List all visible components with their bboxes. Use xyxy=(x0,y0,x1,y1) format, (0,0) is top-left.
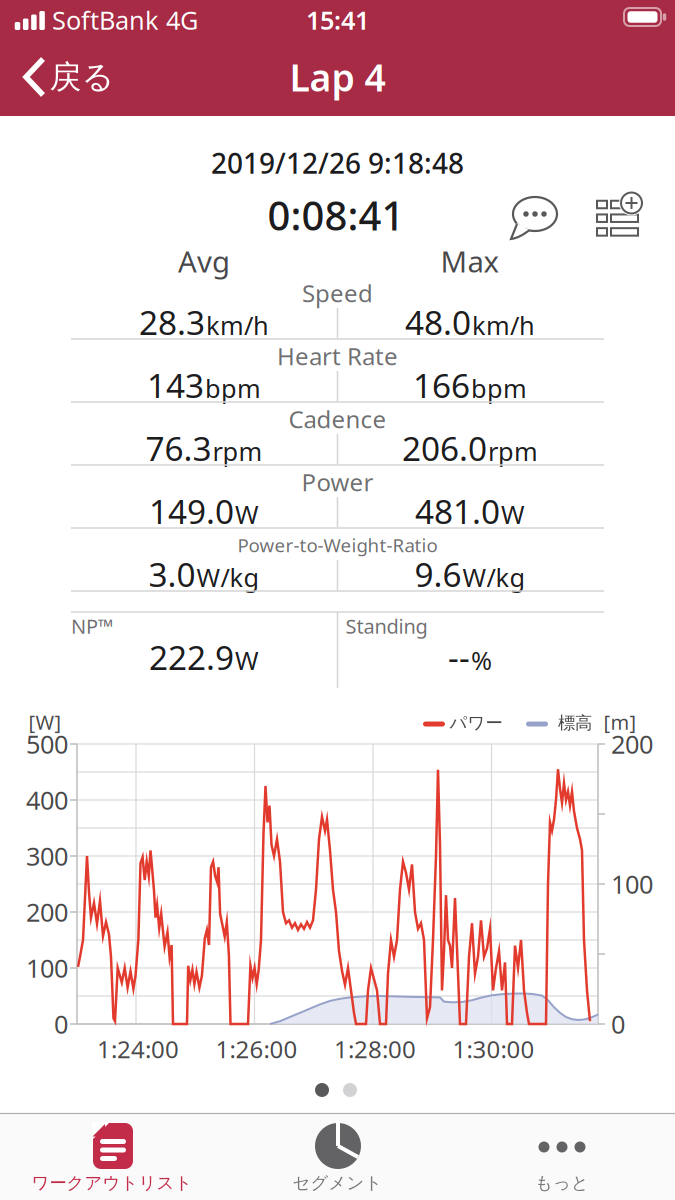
staticText: 0:08:41 xyxy=(267,188,404,241)
staticText: パワー xyxy=(449,712,502,734)
staticText: 166 xyxy=(413,363,470,407)
staticText: km/h xyxy=(206,308,269,342)
staticText: SoftBank 4G xyxy=(52,3,198,37)
staticText: rpm xyxy=(488,434,538,468)
staticText: % xyxy=(471,643,492,677)
staticText: Heart Rate xyxy=(277,340,398,372)
button[interactable]: もっと xyxy=(450,1113,675,1200)
staticText: 481.0 xyxy=(415,489,500,533)
staticText: 149.0 xyxy=(149,489,234,533)
staticText: もっと xyxy=(535,1172,589,1194)
staticText: Power-to-Weight-Ratio xyxy=(237,533,437,557)
staticText: W xyxy=(235,497,259,531)
staticText: 標高 xyxy=(558,712,592,734)
staticText: 15:41 xyxy=(306,3,369,37)
staticText: 206.0 xyxy=(402,426,487,470)
button[interactable]: ワークアウトリスト xyxy=(0,1113,225,1200)
staticText: km/h xyxy=(472,308,535,342)
staticText: Cadence xyxy=(288,403,386,435)
staticText: Lap 4 xyxy=(289,52,385,102)
staticText: -- xyxy=(448,635,470,679)
button[interactable]: ラップリスト追加 xyxy=(592,187,648,243)
staticText: ワークアウトリスト xyxy=(31,1172,192,1194)
staticText: 3.0 xyxy=(148,552,195,596)
staticText: 500 xyxy=(26,727,68,761)
staticText: 76.3 xyxy=(145,426,211,470)
staticText: 48.0 xyxy=(405,300,471,344)
staticText: Max xyxy=(440,241,499,280)
staticText: 100 xyxy=(26,951,68,985)
button[interactable]: 戻る xyxy=(2,41,132,113)
staticText: W/kg xyxy=(462,560,525,594)
staticText: 28.3 xyxy=(139,300,205,344)
staticText: Standing xyxy=(345,613,427,639)
staticText: 300 xyxy=(26,839,68,873)
button[interactable]: セグメント xyxy=(225,1113,450,1200)
staticText: Power xyxy=(301,466,373,498)
staticText: 戻る xyxy=(49,57,114,97)
staticText: 1:28:00 xyxy=(334,1033,416,1065)
staticText: 0 xyxy=(54,1007,68,1041)
staticText: W xyxy=(501,497,525,531)
staticText: bpm xyxy=(471,371,527,405)
staticText: 1:26:00 xyxy=(215,1033,297,1065)
staticText: W/kg xyxy=(196,560,259,594)
staticText: 9.6 xyxy=(414,552,461,596)
staticText: 200 xyxy=(26,895,68,929)
staticText: NP™ xyxy=(71,613,113,639)
staticText: 143 xyxy=(147,363,204,407)
staticText: セグメント xyxy=(292,1172,382,1194)
staticText: 100 xyxy=(611,867,653,901)
staticText: Speed xyxy=(302,277,373,309)
staticText: 1:24:00 xyxy=(97,1033,179,1065)
staticText: 400 xyxy=(26,783,68,817)
staticText: [W] xyxy=(28,709,61,735)
staticText: bpm xyxy=(205,371,261,405)
staticText: W xyxy=(235,643,259,677)
staticText: 0 xyxy=(611,1007,625,1041)
staticText: 1:30:00 xyxy=(452,1033,534,1065)
staticText: 2019/12/26 9:18:48 xyxy=(211,144,464,182)
staticText: 200 xyxy=(611,727,653,761)
staticText: rpm xyxy=(212,434,262,468)
staticText: Avg xyxy=(178,241,230,280)
staticText: 222.9 xyxy=(149,635,234,679)
button[interactable]: コメント xyxy=(507,188,563,244)
staticText: [m] xyxy=(603,709,636,735)
